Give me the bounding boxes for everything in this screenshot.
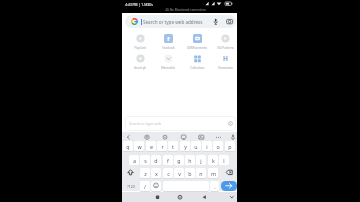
button[interactable]: n bbox=[196, 168, 206, 178]
button[interactable]: z bbox=[140, 168, 150, 178]
staticText: k bbox=[212, 157, 215, 164]
button[interactable]: f bbox=[155, 33, 181, 49]
button[interactable]: / bbox=[140, 181, 150, 191]
staticText: c bbox=[167, 170, 170, 177]
button[interactable]: d bbox=[151, 155, 161, 165]
staticText: o bbox=[216, 143, 220, 150]
button[interactable]: e bbox=[146, 141, 156, 151]
button[interactable]: t bbox=[168, 141, 178, 151]
staticText: h bbox=[188, 157, 192, 164]
button[interactable]: GIFMovements bbox=[184, 33, 210, 49]
staticText: Search or type web bbox=[129, 121, 162, 126]
button[interactable]: Smart.pk bbox=[127, 53, 153, 69]
staticText: i bbox=[206, 143, 208, 150]
staticText: q bbox=[126, 143, 130, 150]
staticText: 9LS Patterns bbox=[217, 46, 234, 50]
staticText: d bbox=[154, 157, 158, 164]
staticText: r bbox=[161, 143, 164, 150]
button[interactable]: x bbox=[151, 168, 161, 178]
button[interactable]: r bbox=[157, 141, 167, 151]
button[interactable]: c bbox=[163, 168, 173, 178]
staticText: / bbox=[144, 183, 146, 190]
button[interactable]: Search or type web address bbox=[125, 15, 236, 28]
button[interactable]: h bbox=[185, 155, 195, 165]
staticText: 4:43 PM | 1.5KB/s bbox=[125, 2, 153, 6]
staticText: PlayCard bbox=[134, 46, 146, 50]
staticText: Smart.pk bbox=[134, 66, 146, 70]
staticText: t bbox=[172, 143, 174, 150]
button[interactable]: v bbox=[174, 168, 184, 178]
button[interactable] bbox=[151, 181, 161, 191]
button[interactable]: g bbox=[174, 155, 184, 165]
button[interactable]: m bbox=[208, 168, 218, 178]
button[interactable]: k bbox=[208, 155, 218, 165]
staticText: z bbox=[144, 170, 147, 177]
staticText: Minimalist bbox=[161, 66, 175, 70]
staticText: Hometown bbox=[218, 66, 233, 70]
staticText: e bbox=[150, 143, 153, 150]
staticText: GIFMovements bbox=[187, 46, 207, 50]
staticText: Facebook bbox=[162, 46, 175, 50]
button[interactable]: f bbox=[163, 155, 173, 165]
staticText: m bbox=[211, 170, 216, 177]
button[interactable] bbox=[221, 181, 237, 191]
button[interactable]: Minimalist bbox=[155, 53, 181, 69]
button[interactable]: o bbox=[213, 141, 223, 151]
staticText: Collections bbox=[190, 66, 205, 70]
button[interactable]: i bbox=[202, 141, 212, 151]
staticText: y bbox=[184, 143, 187, 150]
staticText: s bbox=[144, 157, 147, 164]
staticText: f bbox=[167, 35, 170, 43]
button[interactable]: PlayCard bbox=[127, 33, 153, 49]
button[interactable]: u bbox=[191, 141, 201, 151]
button[interactable]: q bbox=[123, 141, 133, 151]
staticText: ?123 bbox=[127, 184, 135, 189]
staticText: n bbox=[199, 170, 203, 177]
button[interactable]: Search or type web bbox=[125, 116, 236, 131]
staticText: g bbox=[177, 157, 181, 164]
button[interactable]: 9LS Patterns bbox=[212, 33, 238, 49]
button[interactable]: j bbox=[196, 155, 206, 165]
button[interactable]: . bbox=[210, 181, 219, 191]
button[interactable] bbox=[122, 192, 237, 202]
staticText: H bbox=[223, 54, 228, 63]
staticText: b bbox=[188, 170, 192, 177]
staticText: u bbox=[194, 143, 198, 150]
button[interactable] bbox=[123, 181, 139, 191]
button[interactable]: y bbox=[180, 141, 190, 151]
button[interactable]: p bbox=[225, 141, 235, 151]
button[interactable]: a bbox=[129, 155, 139, 165]
staticText: f bbox=[167, 157, 169, 164]
button[interactable] bbox=[123, 168, 139, 178]
staticText: x bbox=[155, 170, 158, 177]
staticText: a bbox=[133, 157, 136, 164]
staticText: j bbox=[200, 157, 202, 164]
staticText: . bbox=[214, 183, 216, 190]
staticText: l bbox=[223, 157, 225, 164]
staticText: Search or type web address bbox=[143, 19, 203, 25]
staticText: v bbox=[178, 170, 181, 177]
staticText: p bbox=[228, 143, 232, 150]
button[interactable]: b bbox=[185, 168, 195, 178]
button[interactable]: H bbox=[212, 53, 238, 69]
button[interactable]: w bbox=[134, 141, 144, 151]
button[interactable] bbox=[221, 168, 237, 178]
staticText: 4G No Monitored connection bbox=[165, 8, 206, 12]
button[interactable]: s bbox=[140, 155, 150, 165]
button[interactable]: l bbox=[219, 155, 229, 165]
button[interactable]: Collections bbox=[184, 53, 210, 69]
staticText: w bbox=[137, 143, 142, 150]
